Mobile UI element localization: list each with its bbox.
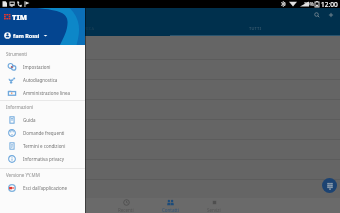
staticText: Versione YY.MM bbox=[6, 172, 40, 178]
button[interactable]: Cerca bbox=[310, 8, 324, 22]
button[interactable]: Contatti bbox=[148, 198, 192, 213]
button[interactable]: fam Rossi bbox=[0, 28, 85, 42]
button[interactable]: Termini e condizioni bbox=[0, 139, 85, 152]
staticText: fam Rossi bbox=[13, 32, 40, 39]
staticText: Strumenti bbox=[6, 51, 28, 57]
button[interactable]: Guida bbox=[0, 113, 85, 126]
button[interactable]: Servizi bbox=[192, 198, 236, 213]
staticText: 39% bbox=[304, 1, 314, 8]
staticText: Impostazioni bbox=[23, 64, 51, 70]
button[interactable]: Autodiagnostica bbox=[0, 73, 85, 86]
button[interactable]: RUBRICA bbox=[0, 21, 170, 36]
staticText: Esci dall'applicazione bbox=[23, 185, 67, 191]
staticText: Servizi bbox=[207, 207, 221, 213]
button[interactable]: Tastierino bbox=[322, 178, 337, 193]
staticText: Termini e condizioni bbox=[23, 143, 66, 149]
staticText: Domande frequenti bbox=[23, 130, 65, 136]
staticText: 12:00 bbox=[321, 0, 338, 8]
button[interactable]: Esci dall'applicazione bbox=[0, 181, 85, 194]
staticText: Guida bbox=[23, 117, 36, 123]
button[interactable]: Impostazioni bbox=[0, 60, 85, 73]
staticText: Amministrazione linea bbox=[23, 90, 71, 96]
button[interactable]: Domande frequenti bbox=[0, 126, 85, 139]
button[interactable]: Informativa privacy bbox=[0, 152, 85, 165]
staticText: TUTTI bbox=[249, 26, 262, 31]
button[interactable]: Recenti bbox=[104, 198, 148, 213]
staticText: Recenti bbox=[118, 207, 134, 213]
staticText: TIM bbox=[12, 12, 27, 22]
button[interactable]: Aggiungi bbox=[324, 8, 338, 22]
staticText: Contatti bbox=[162, 207, 179, 213]
button[interactable]: Amministrazione linea bbox=[0, 86, 85, 99]
staticText: Informativa privacy bbox=[23, 156, 64, 162]
staticText: RUBRICA bbox=[76, 26, 95, 31]
button[interactable]: TUTTI bbox=[170, 21, 340, 36]
staticText: Informazioni bbox=[6, 104, 34, 110]
staticText: Autodiagnostica bbox=[23, 77, 58, 83]
